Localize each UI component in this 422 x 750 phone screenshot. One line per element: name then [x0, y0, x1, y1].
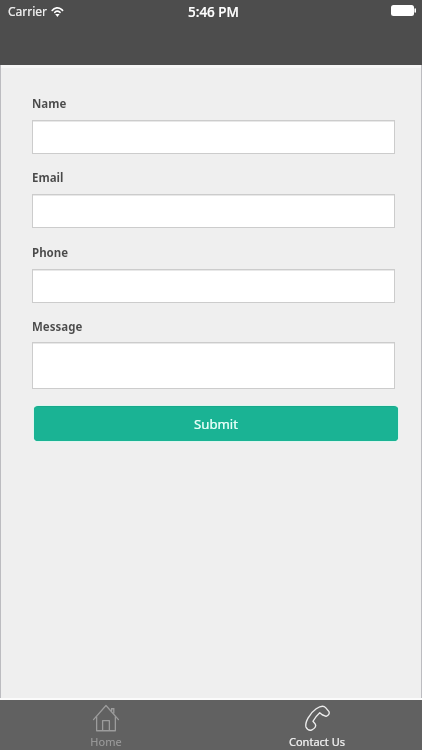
staticText: Carrier — [8, 3, 48, 19]
staticText: Message — [32, 319, 83, 335]
staticText: Submit — [194, 415, 238, 433]
other: Battery — [391, 5, 416, 16]
staticText: Name — [32, 96, 67, 112]
button[interactable] — [32, 120, 395, 154]
button[interactable]: Home — [0, 700, 211, 750]
button[interactable]: Contact Us — [211, 700, 422, 750]
button[interactable]: Submit — [34, 407, 398, 441]
button[interactable] — [32, 342, 395, 389]
staticText: Contact Us — [289, 734, 345, 749]
staticText: Home — [90, 734, 122, 749]
staticText: Email — [32, 170, 64, 186]
other: Wifi — [50, 5, 65, 16]
button[interactable] — [32, 269, 395, 303]
staticText: 5:46 PM — [188, 3, 239, 21]
staticText: Phone — [32, 245, 69, 261]
button[interactable] — [32, 194, 395, 228]
